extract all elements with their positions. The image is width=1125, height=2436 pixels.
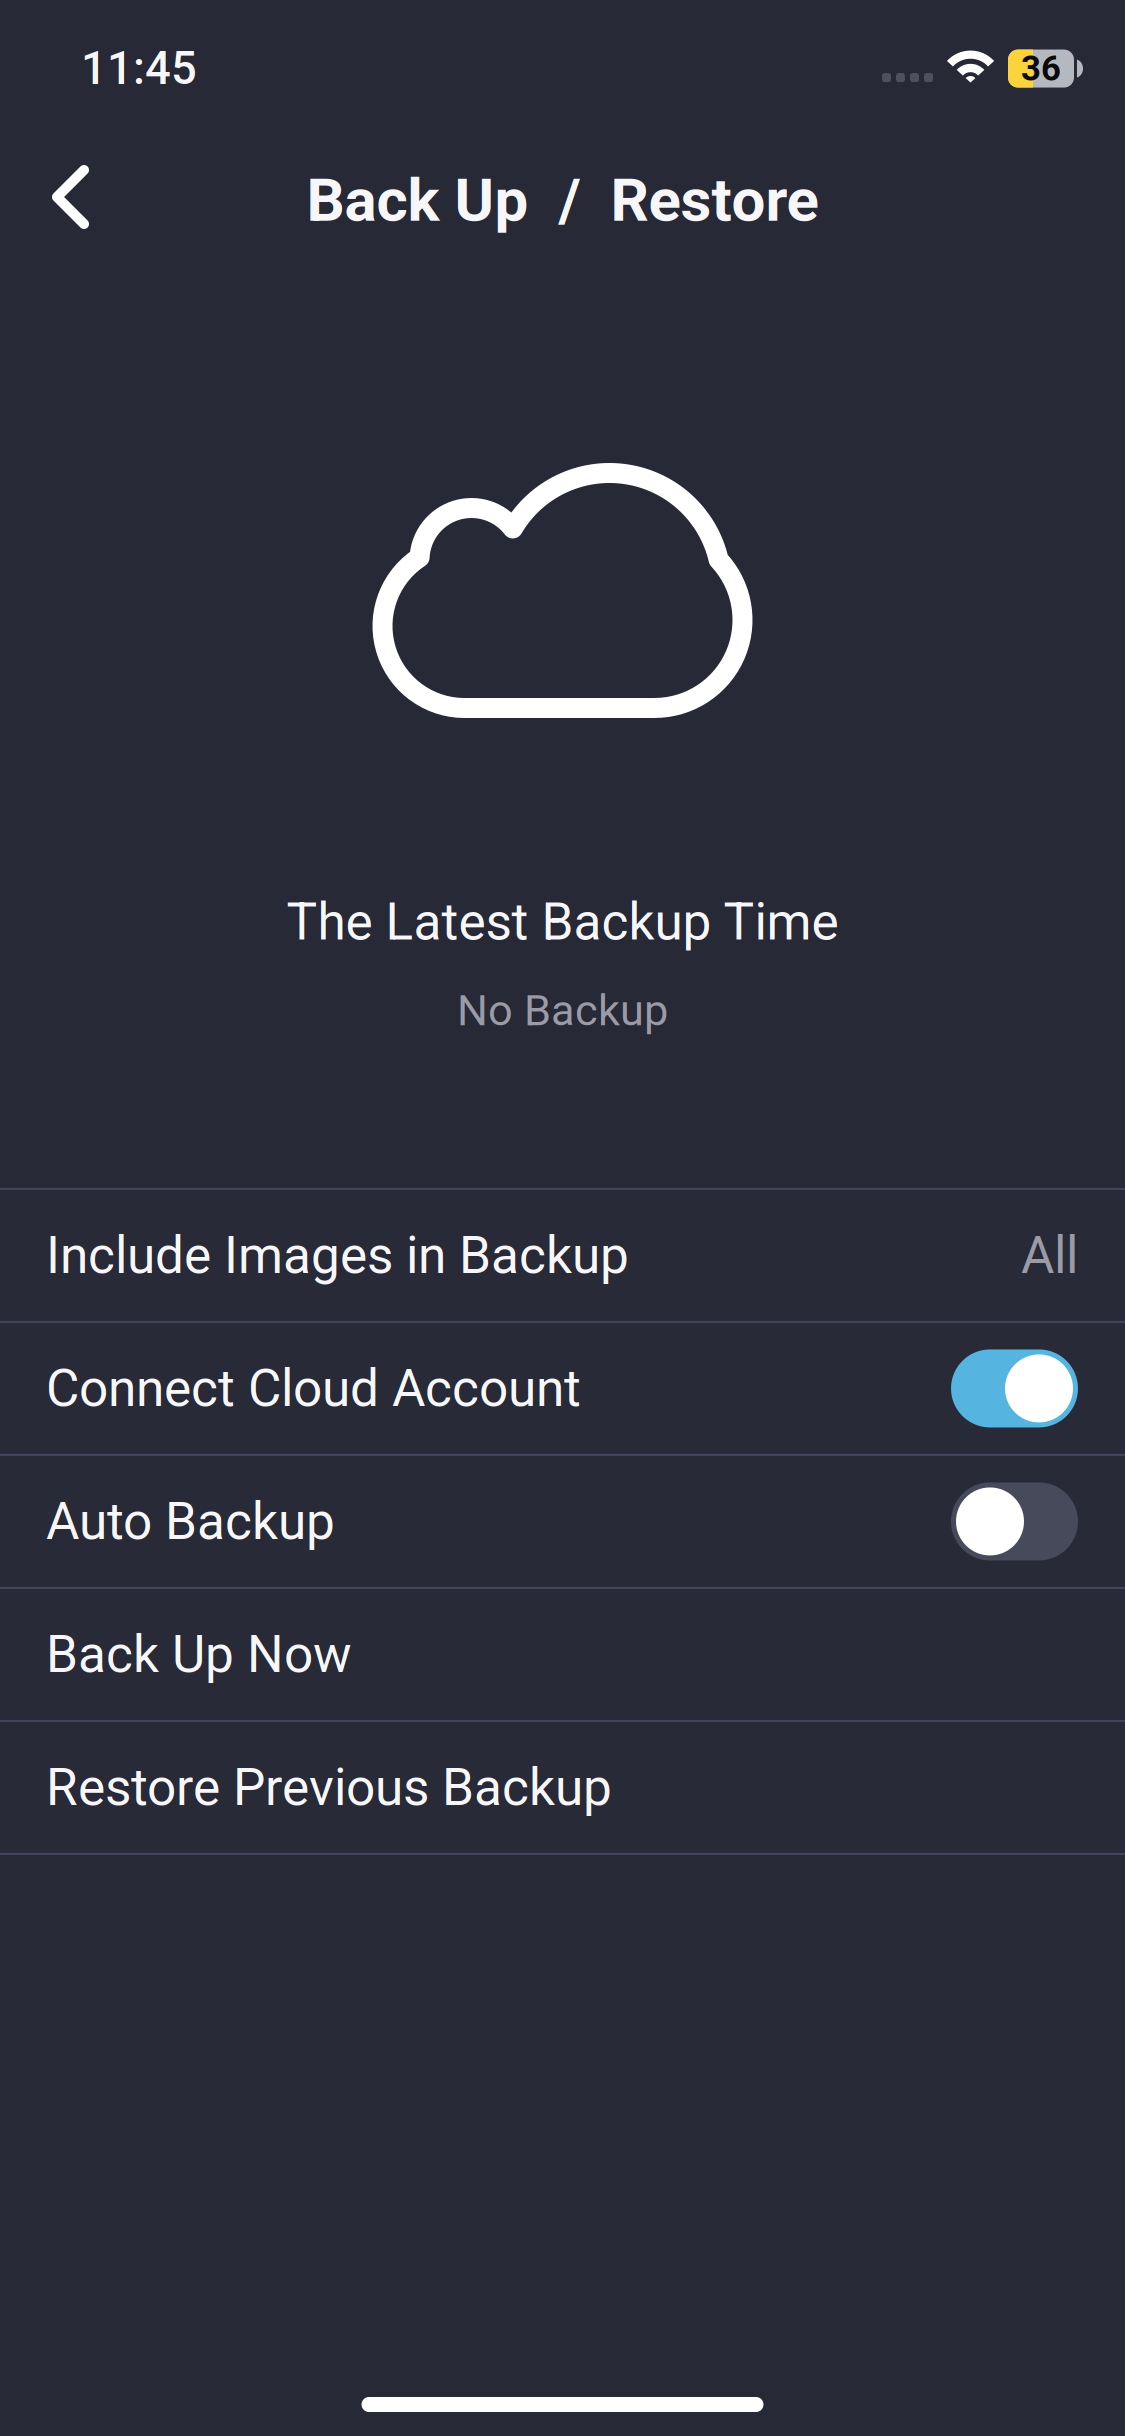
- staticText: Connect Cloud Account: [46, 1358, 581, 1419]
- button[interactable]: Connect Cloud Account: [0, 1323, 1125, 1454]
- button[interactable]: Back: [0, 132, 144, 264]
- button[interactable]: Restore Previous Backup: [0, 1722, 1125, 1853]
- staticText: Restore Previous Backup: [46, 1757, 612, 1818]
- button[interactable]: Include Images in Backup: [0, 1190, 1125, 1321]
- button[interactable]: Back Up Now: [0, 1589, 1125, 1720]
- staticText: All: [1021, 1225, 1078, 1286]
- staticText: No Backup: [457, 985, 668, 1036]
- staticText: The Latest Backup Time: [286, 892, 838, 952]
- staticText: Back Up Now: [46, 1624, 352, 1685]
- staticText: 36: [1021, 48, 1061, 89]
- button[interactable]: Auto Backup: [0, 1456, 1125, 1587]
- staticText: 11:45: [81, 42, 197, 95]
- staticText: Include Images in Backup: [46, 1225, 629, 1286]
- staticText: Auto Backup: [46, 1491, 335, 1552]
- staticText: Back Up / Restore: [306, 165, 818, 235]
